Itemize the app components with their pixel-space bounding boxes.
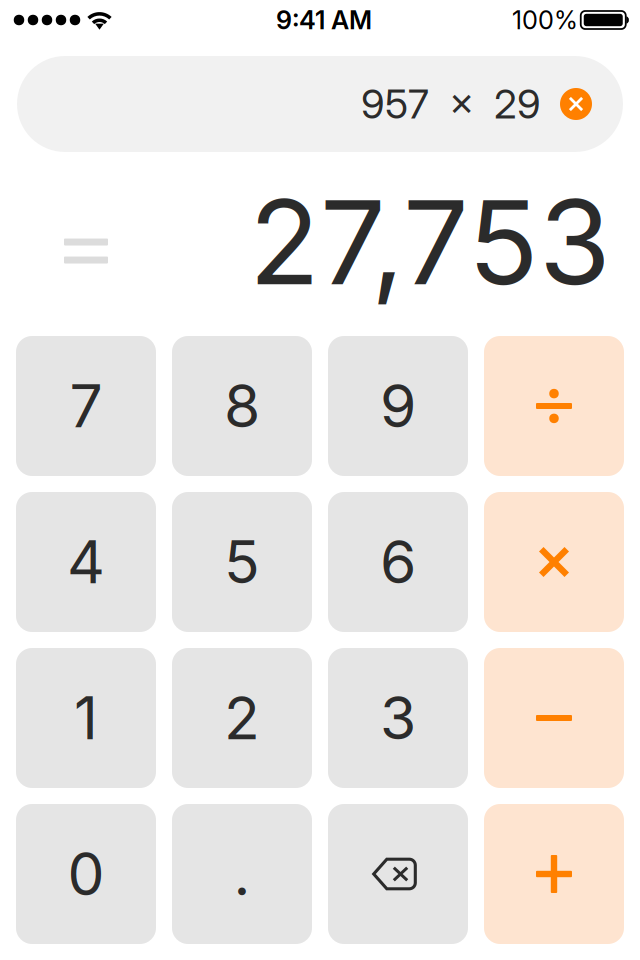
staticText: 2 bbox=[224, 682, 260, 753]
button[interactable]: Divide bbox=[484, 336, 624, 476]
button[interactable]: 4 bbox=[16, 492, 156, 632]
button[interactable]: 7 bbox=[16, 336, 156, 476]
staticText: 9:41 AM bbox=[276, 5, 372, 35]
button[interactable]: . bbox=[172, 804, 312, 944]
button[interactable]: 3 bbox=[328, 648, 468, 788]
staticText: 4 bbox=[67, 526, 105, 597]
staticText: 7 bbox=[69, 370, 102, 441]
button[interactable]: 6 bbox=[328, 492, 468, 632]
button[interactable]: 0 bbox=[16, 804, 156, 944]
staticText: 100% bbox=[512, 5, 578, 35]
button[interactable]: Delete bbox=[328, 804, 468, 944]
staticText: 8 bbox=[224, 370, 260, 441]
button[interactable]: 5 bbox=[172, 492, 312, 632]
staticText: 9 bbox=[380, 370, 416, 441]
staticText: . bbox=[233, 838, 250, 909]
button[interactable]: 1 bbox=[16, 648, 156, 788]
staticText: 1 bbox=[74, 682, 98, 753]
staticText: 0 bbox=[67, 838, 104, 909]
staticText: 6 bbox=[380, 526, 416, 597]
button[interactable]: 9 bbox=[328, 336, 468, 476]
staticText: 27,753 bbox=[249, 172, 611, 312]
staticText: 5 bbox=[224, 526, 260, 597]
button[interactable]: 2 bbox=[172, 648, 312, 788]
button[interactable]: 957 × 29 bbox=[17, 56, 623, 152]
button[interactable]: Multiply bbox=[484, 492, 624, 632]
button[interactable]: Subtract bbox=[484, 648, 624, 788]
staticText: 3 bbox=[380, 682, 416, 753]
button[interactable]: 8 bbox=[172, 336, 312, 476]
staticText: 957 × 29 bbox=[361, 80, 541, 128]
button[interactable]: Add bbox=[484, 804, 624, 944]
button[interactable]: Clear bbox=[560, 88, 592, 120]
